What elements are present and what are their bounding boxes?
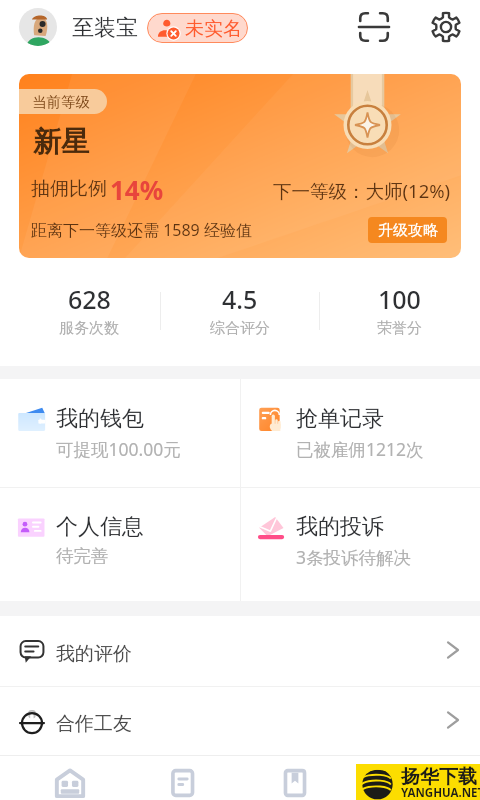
button[interactable]: 个人信息 [0, 487, 240, 595]
staticText: 合作工友 [56, 712, 132, 736]
staticText: 我的钱包 [56, 405, 144, 433]
staticText: 100 [378, 282, 421, 316]
button[interactable]: 100 [319, 258, 479, 366]
staticText: 未实名 [185, 17, 242, 41]
staticText: 当前等级 [32, 93, 90, 111]
button[interactable]: 我的钱包 [0, 379, 240, 487]
staticText: 扬华下载 [401, 765, 477, 789]
staticText: 可提现100.00元 [56, 437, 181, 461]
button[interactable]: 我的投诉 [240, 487, 480, 595]
staticText: 综合评分 [210, 319, 270, 338]
staticText: 服务次数 [59, 319, 119, 338]
staticText: 升级攻略 [378, 221, 438, 240]
staticText: 我的投诉 [296, 513, 384, 541]
staticText: 3条投诉待解决 [296, 545, 412, 569]
button[interactable]: 合作工友 [0, 686, 480, 756]
staticText: 14% [110, 172, 164, 207]
button[interactable]: 我的评价 [0, 616, 480, 686]
button[interactable]: 未实名 [147, 13, 248, 43]
staticText: 个人信息 [56, 513, 144, 541]
staticText: 距离下一等级还需 1589 经验值 [31, 219, 252, 241]
button[interactable]: Notes [267, 756, 323, 800]
button[interactable]: Avatar [19, 8, 57, 46]
staticText: 我的评价 [56, 642, 132, 666]
button[interactable]: Profile [380, 756, 436, 800]
staticText: 待完善 [56, 545, 109, 567]
staticText: 抽佣比例 [31, 177, 107, 201]
staticText: 已被雇佣1212次 [296, 437, 424, 461]
button[interactable]: Home [42, 756, 98, 800]
staticText: 荣誉分 [377, 319, 422, 338]
button[interactable]: Orders [155, 756, 211, 800]
staticText: 628 [68, 282, 111, 316]
staticText: 新星 [33, 124, 89, 159]
button[interactable]: 628 [9, 258, 169, 366]
button[interactable]: Settings [430, 11, 462, 43]
button[interactable]: Scan [358, 11, 390, 43]
button[interactable]: 4.5 [160, 258, 319, 366]
button[interactable]: 抢单记录 [240, 379, 480, 487]
staticText: 4.5 [222, 282, 258, 316]
button[interactable]: 升级攻略 [368, 217, 447, 243]
staticText: 至装宝 [72, 14, 138, 42]
staticText: 抢单记录 [296, 405, 384, 433]
staticText: 下一等级：大师(12%) [273, 178, 451, 203]
staticText: YANGHUA.NET [401, 785, 480, 800]
